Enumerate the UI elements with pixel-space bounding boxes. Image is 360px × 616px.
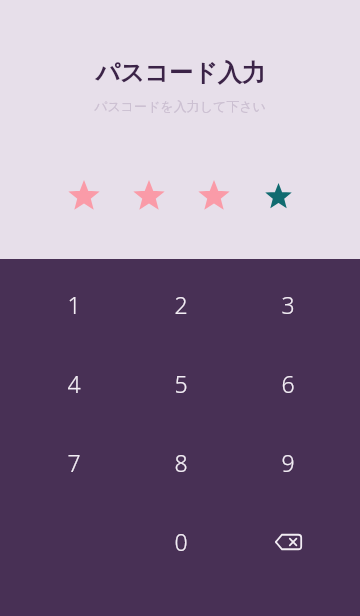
staticText: 1 — [67, 289, 81, 320]
button[interactable]: 9 — [234, 423, 341, 502]
button[interactable]: 8 — [127, 423, 234, 502]
button[interactable]: 2 — [127, 265, 234, 344]
button[interactable]: Delete — [234, 502, 341, 581]
staticText: 4 — [67, 368, 81, 399]
staticText: 5 — [174, 368, 188, 399]
button[interactable]: 1 — [20, 265, 127, 344]
staticText: 3 — [281, 289, 295, 320]
staticText: 8 — [174, 447, 188, 478]
button[interactable]: 3 — [234, 265, 341, 344]
button[interactable]: 7 — [20, 423, 127, 502]
staticText: 9 — [281, 447, 295, 478]
staticText: 6 — [281, 368, 295, 399]
staticText: パスコード入力 — [95, 58, 266, 88]
button[interactable]: 0 — [127, 502, 234, 581]
staticText: 2 — [174, 289, 188, 320]
button[interactable]: 6 — [234, 344, 341, 423]
staticText: 7 — [67, 447, 81, 478]
staticText: 0 — [174, 526, 188, 557]
button[interactable]: 5 — [127, 344, 234, 423]
staticText: パスコードを入力して下さい — [94, 98, 266, 114]
button[interactable]: 4 — [20, 344, 127, 423]
